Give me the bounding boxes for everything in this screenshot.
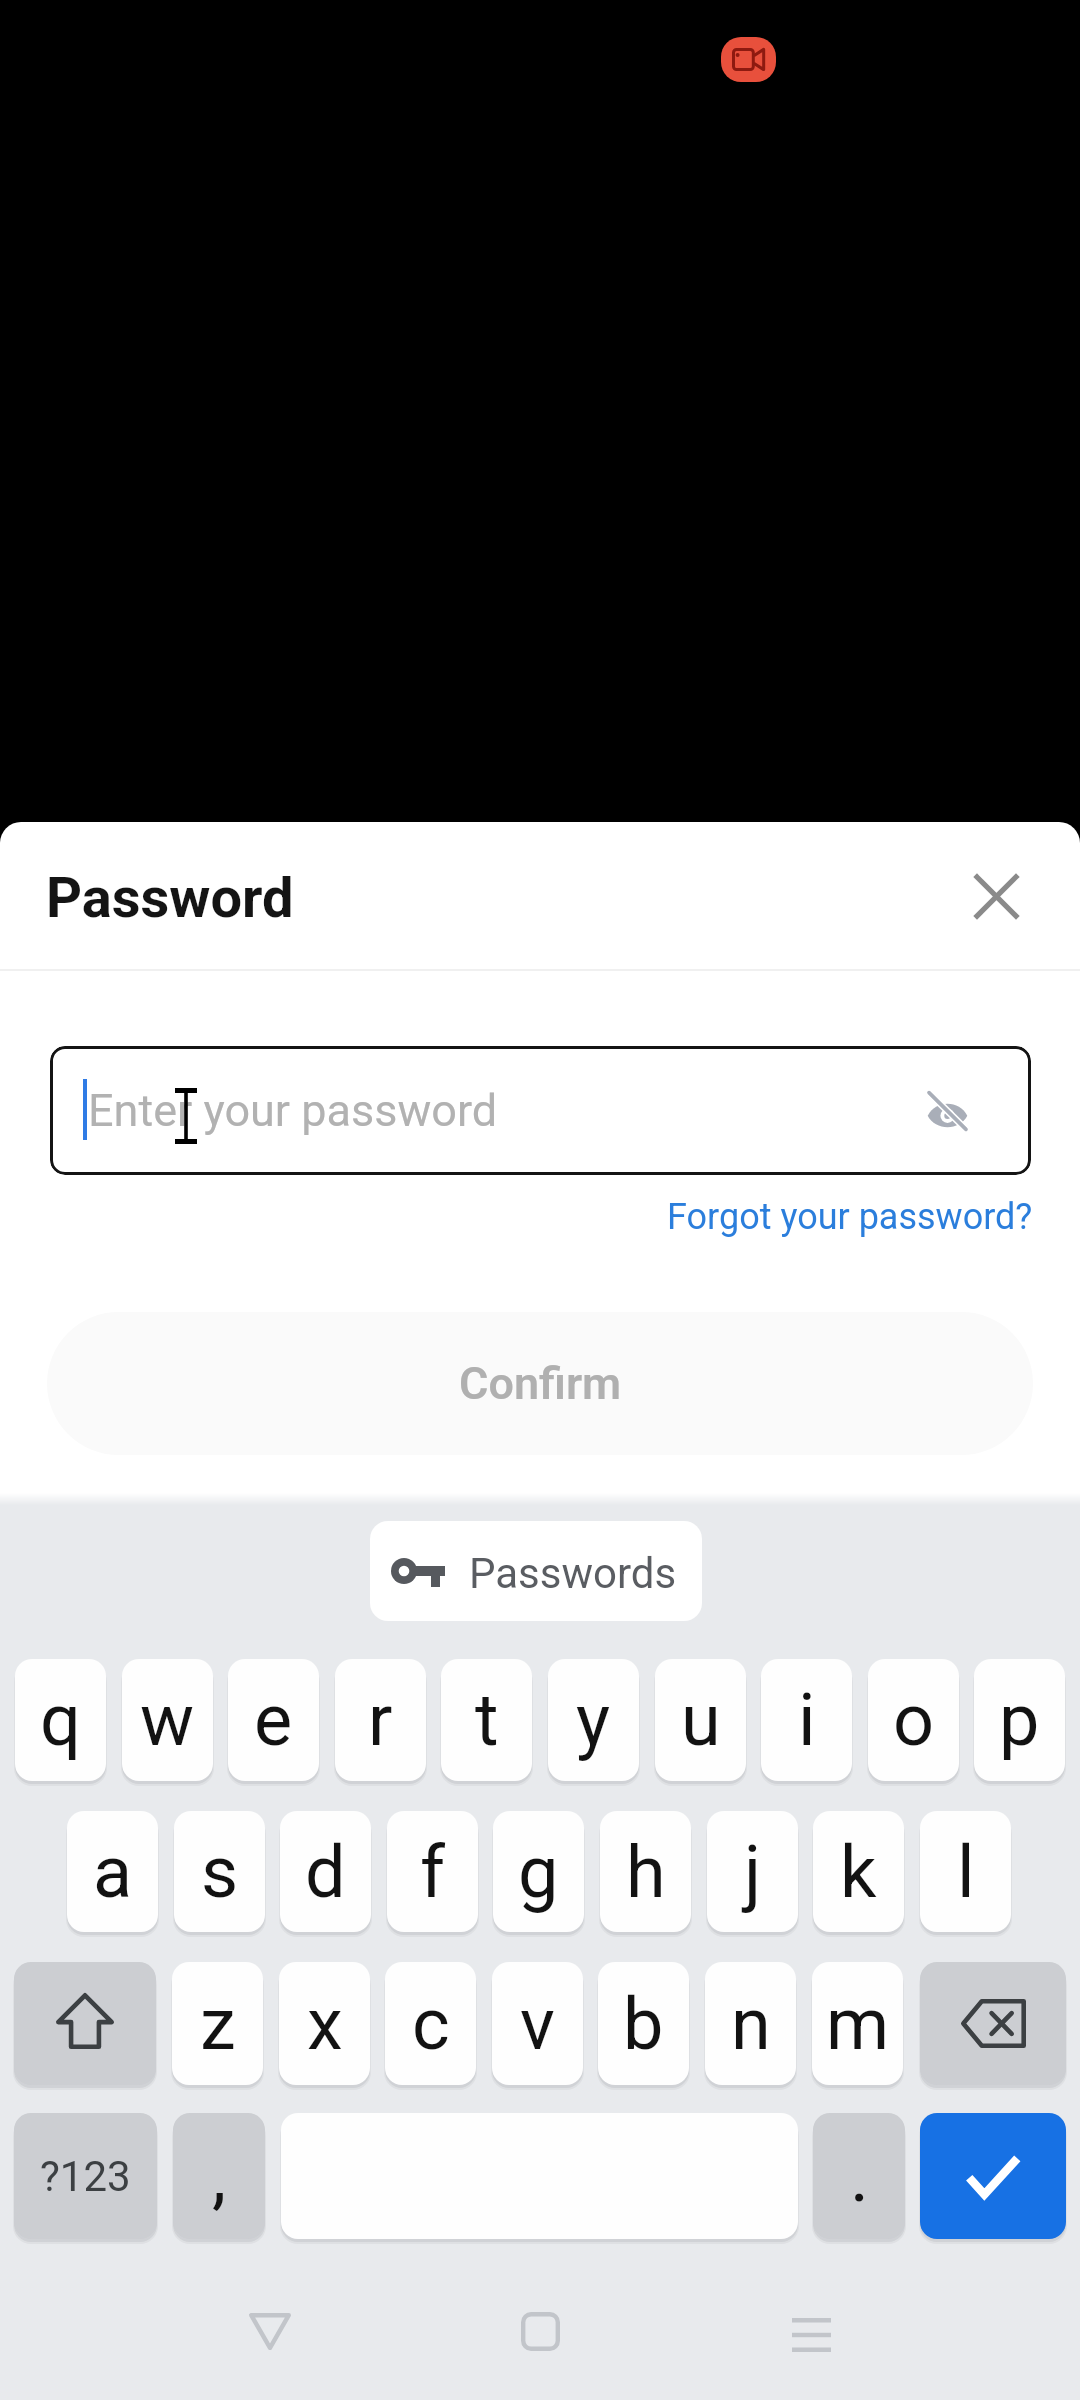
staticText: j [744, 1830, 762, 1914]
staticText: o [893, 1678, 935, 1762]
staticText: , [212, 2134, 227, 2218]
button[interactable]: Screen recording [721, 37, 776, 82]
staticText: e [254, 1678, 293, 1762]
button[interactable]: l [920, 1811, 1011, 1932]
button[interactable]: . [813, 2113, 905, 2239]
staticText: d [305, 1830, 346, 1914]
staticText: r [368, 1678, 393, 1762]
button[interactable]: v [492, 1962, 583, 2085]
staticText: Password [46, 865, 294, 931]
staticText: i [798, 1678, 816, 1762]
staticText: y [576, 1678, 611, 1762]
staticText: s [201, 1830, 239, 1914]
staticText: u [681, 1678, 721, 1762]
button[interactable]: Enter your password [50, 1046, 1031, 1175]
button[interactable]: Back [220, 2286, 320, 2376]
button[interactable]: Passwords [370, 1521, 702, 1621]
staticText: . [850, 2134, 869, 2218]
button[interactable]: Recent apps [761, 2286, 861, 2376]
button[interactable]: o [868, 1659, 959, 1781]
button[interactable]: Backspace [920, 1962, 1066, 2085]
button[interactable]: Forgot your password? [667, 1196, 1033, 1238]
button[interactable]: i [761, 1659, 852, 1781]
button[interactable]: s [174, 1811, 265, 1932]
button[interactable]: w [122, 1659, 213, 1781]
staticText: h [626, 1830, 666, 1914]
staticText: g [518, 1830, 559, 1914]
button[interactable]: q [15, 1659, 106, 1781]
staticText: ?123 [40, 2152, 131, 2201]
staticText: t [475, 1678, 499, 1762]
button[interactable]: t [441, 1659, 532, 1781]
staticText: l [957, 1830, 975, 1914]
button[interactable]: y [548, 1659, 639, 1781]
staticText: f [420, 1830, 446, 1914]
button[interactable]: g [493, 1811, 584, 1932]
button[interactable]: x [279, 1962, 370, 2085]
button[interactable]: j [707, 1811, 798, 1932]
button[interactable]: d [280, 1811, 371, 1932]
staticText: w [140, 1678, 195, 1762]
button[interactable]: n [705, 1962, 796, 2085]
staticText: b [623, 1982, 664, 2066]
button[interactable]: k [813, 1811, 904, 1932]
staticText: k [840, 1830, 877, 1914]
button[interactable]: a [67, 1811, 158, 1932]
staticText: a [93, 1830, 133, 1914]
button[interactable]: m [812, 1962, 903, 2085]
button[interactable]: Confirm [47, 1312, 1033, 1455]
staticText: c [412, 1982, 450, 2066]
button[interactable]: r [335, 1659, 426, 1781]
button[interactable]: z [172, 1962, 263, 2085]
button[interactable]: c [385, 1962, 476, 2085]
button[interactable]: Shift [14, 1962, 156, 2085]
button[interactable]: p [974, 1659, 1065, 1781]
staticText: Confirm [459, 1357, 622, 1410]
button[interactable]: b [598, 1962, 689, 2085]
staticText: Passwords [469, 1549, 677, 1598]
staticText: z [200, 1982, 236, 2066]
staticText: x [307, 1982, 343, 2066]
button[interactable]: Enter [920, 2113, 1066, 2239]
button[interactable]: Home [490, 2286, 590, 2376]
staticText: m [826, 1982, 890, 2066]
button[interactable]: Show password [900, 1064, 994, 1158]
button[interactable]: f [387, 1811, 478, 1932]
button[interactable]: Close [950, 850, 1042, 942]
staticText: Enter your password [88, 1084, 498, 1137]
button[interactable]: u [655, 1659, 746, 1781]
button[interactable]: , [173, 2113, 265, 2239]
staticText: v [520, 1982, 555, 2066]
staticText: n [731, 1982, 771, 2066]
staticText: q [40, 1678, 81, 1762]
button[interactable]: ?123 [14, 2113, 157, 2239]
staticText: p [999, 1678, 1040, 1762]
button[interactable]: h [600, 1811, 691, 1932]
button[interactable]: e [228, 1659, 319, 1781]
